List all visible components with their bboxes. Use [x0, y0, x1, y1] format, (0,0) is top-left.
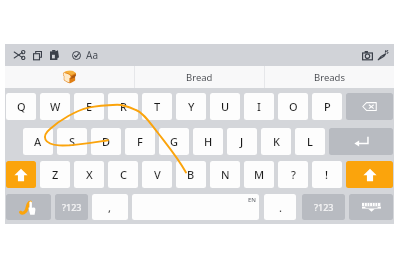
button[interactable]: Enter — [329, 128, 393, 155]
button[interactable]: 🍞 — [5, 66, 134, 88]
staticText: , — [108, 200, 112, 215]
button[interactable]: A — [23, 128, 53, 155]
staticText: T — [154, 99, 161, 114]
staticText: B — [187, 167, 195, 182]
staticText: V — [154, 167, 161, 182]
button[interactable]: Shift — [346, 161, 393, 188]
staticText: M — [254, 167, 265, 182]
button[interactable]: Paste — [43, 44, 65, 66]
button[interactable]: Camera — [356, 44, 378, 66]
button[interactable]: ? — [278, 161, 308, 188]
staticText: Y — [188, 99, 195, 114]
staticText: ?123 — [314, 201, 334, 213]
button[interactable]: F — [125, 128, 155, 155]
staticText: EN — [248, 196, 256, 204]
button[interactable]: G — [159, 128, 189, 155]
button[interactable]: N — [210, 161, 240, 188]
button[interactable]: Z — [40, 161, 70, 188]
staticText: H — [204, 134, 213, 149]
staticText: W — [50, 99, 61, 114]
button[interactable]: O — [278, 93, 308, 120]
staticText: Breads — [314, 71, 345, 84]
staticText: D — [102, 134, 111, 149]
button[interactable]: T — [142, 93, 172, 120]
button[interactable]: U — [210, 93, 240, 120]
staticText: ? — [291, 167, 296, 182]
staticText: F — [137, 134, 143, 149]
button[interactable]: . — [264, 194, 296, 220]
staticText: C — [120, 167, 127, 182]
staticText: Z — [52, 167, 59, 182]
button[interactable]: Hide keyboard — [349, 194, 393, 220]
button[interactable]: EN — [132, 194, 259, 220]
staticText: K — [273, 134, 280, 149]
button[interactable]: E — [74, 93, 104, 120]
button[interactable]: Cut — [8, 44, 30, 66]
button[interactable]: Aa — [81, 44, 103, 66]
staticText: R — [120, 99, 127, 114]
staticText: 🍞 — [62, 70, 77, 84]
staticText: O — [289, 99, 298, 114]
staticText: U — [221, 99, 230, 114]
button[interactable]: , — [92, 194, 128, 220]
staticText: N — [221, 167, 230, 182]
button[interactable]: ! — [312, 161, 342, 188]
button[interactable]: H — [193, 128, 223, 155]
button[interactable]: Bread — [135, 66, 264, 88]
button[interactable]: Shift — [6, 161, 36, 188]
staticText: Q — [17, 99, 26, 114]
button[interactable]: C — [108, 161, 138, 188]
staticText: S — [69, 134, 76, 149]
staticText: P — [324, 99, 331, 114]
button[interactable]: Copy — [26, 44, 48, 66]
button[interactable]: Backspace — [346, 93, 393, 120]
button[interactable]: M — [244, 161, 274, 188]
staticText: X — [86, 167, 93, 182]
button[interactable]: X — [74, 161, 104, 188]
staticText: Aa — [86, 48, 98, 62]
button[interactable]: K — [261, 128, 291, 155]
button[interactable]: S — [57, 128, 87, 155]
button[interactable]: V — [142, 161, 172, 188]
button[interactable]: ?123 — [55, 194, 88, 220]
staticText: J — [240, 134, 244, 149]
staticText: G — [170, 134, 178, 149]
staticText: A — [34, 134, 42, 149]
button[interactable]: Handwriting — [6, 194, 51, 220]
button[interactable]: Select all — [65, 44, 87, 66]
button[interactable]: J — [227, 128, 257, 155]
staticText: L — [307, 134, 313, 149]
button[interactable]: R — [108, 93, 138, 120]
button[interactable]: B — [176, 161, 206, 188]
button[interactable]: Q — [6, 93, 36, 120]
button[interactable]: Y — [176, 93, 206, 120]
staticText: ! — [325, 167, 329, 182]
button[interactable]: D — [91, 128, 121, 155]
staticText: E — [86, 99, 93, 114]
button[interactable]: L — [295, 128, 325, 155]
staticText: ?123 — [62, 201, 82, 213]
button[interactable]: W — [40, 93, 70, 120]
staticText: I — [257, 99, 261, 114]
button[interactable]: P — [312, 93, 342, 120]
staticText: . — [279, 200, 282, 215]
button[interactable]: Breads — [265, 66, 394, 88]
button[interactable]: ?123 — [302, 194, 345, 220]
button[interactable]: I — [244, 93, 274, 120]
button[interactable]: Voice input — [372, 44, 394, 66]
staticText: Bread — [186, 71, 213, 84]
